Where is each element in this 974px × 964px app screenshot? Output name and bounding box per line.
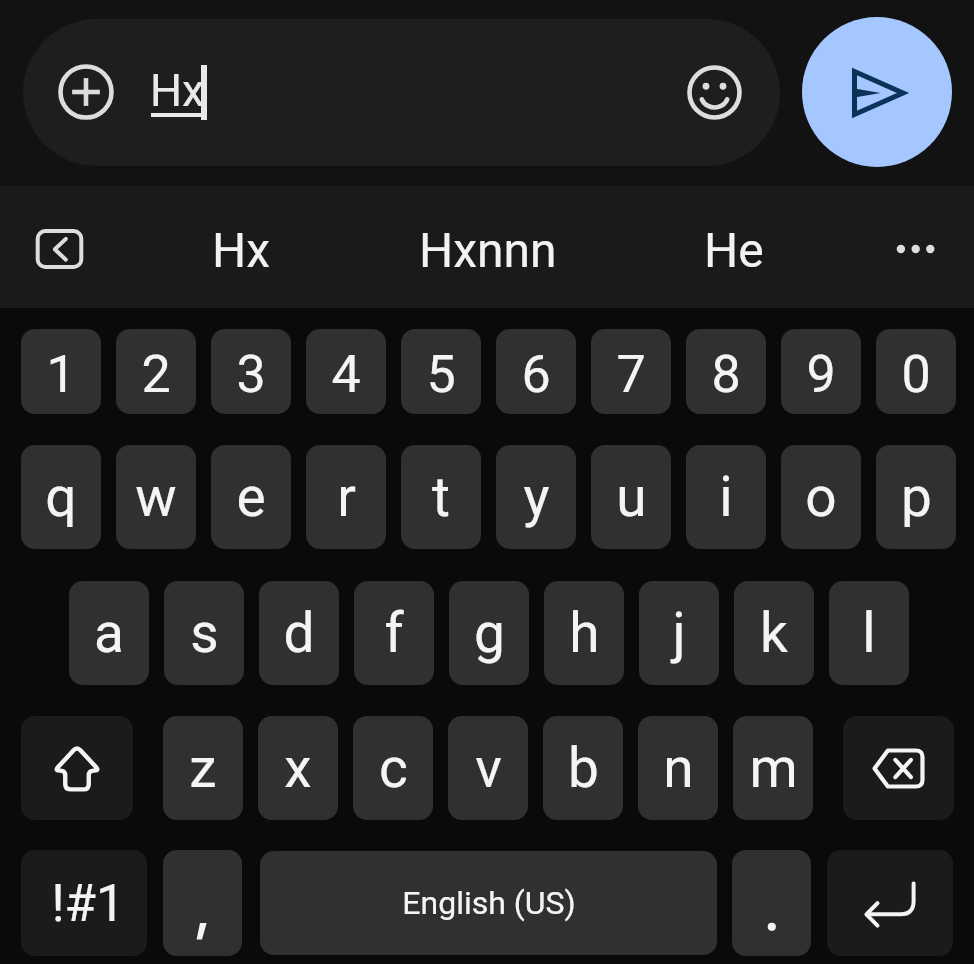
staticText: d: [283, 601, 315, 665]
button[interactable]: !#1: [21, 850, 147, 956]
button[interactable]: y: [496, 445, 576, 549]
staticText: s: [190, 601, 219, 665]
staticText: i: [719, 465, 733, 529]
staticText: h: [569, 601, 600, 665]
button[interactable]: Hxnnn: [388, 186, 588, 308]
staticText: Hxnnn: [419, 222, 557, 278]
button[interactable]: h: [544, 581, 624, 685]
staticText: u: [616, 465, 647, 529]
button[interactable]: o: [781, 445, 861, 549]
button[interactable]: r: [306, 445, 386, 549]
button[interactable]: x: [258, 716, 338, 820]
button[interactable]: Shift: [21, 716, 133, 820]
button[interactable]: Period: [732, 850, 811, 956]
button[interactable]: v: [448, 716, 528, 820]
button[interactable]: d: [259, 581, 339, 685]
staticText: He: [704, 222, 764, 278]
button[interactable]: 5: [401, 329, 481, 414]
staticText: 0: [901, 344, 931, 405]
button[interactable]: t: [401, 445, 481, 549]
staticText: 8: [711, 344, 741, 405]
staticText: c: [379, 736, 408, 800]
staticText: e: [236, 465, 266, 529]
button[interactable]: c: [353, 716, 433, 820]
button[interactable]: Backspace: [843, 716, 954, 820]
staticText: r: [337, 465, 356, 529]
button[interactable]: u: [591, 445, 671, 549]
button[interactable]: Hx: [141, 186, 341, 308]
button[interactable]: 9: [781, 329, 861, 414]
button[interactable]: m: [733, 716, 813, 820]
button[interactable]: Add attachment: [58, 64, 114, 120]
staticText: y: [523, 465, 550, 529]
staticText: o: [805, 465, 837, 529]
staticText: Hx: [150, 64, 205, 117]
staticText: 2: [141, 344, 171, 405]
button[interactable]: 1: [21, 329, 101, 414]
staticText: p: [901, 465, 932, 529]
staticText: m: [749, 736, 798, 800]
button[interactable]: More suggestions: [878, 213, 953, 285]
staticText: w: [135, 465, 177, 529]
staticText: q: [45, 465, 77, 529]
button[interactable]: j: [639, 581, 719, 685]
button[interactable]: l: [829, 581, 909, 685]
button[interactable]: f: [354, 581, 434, 685]
staticText: 3: [236, 344, 266, 405]
button[interactable]: 6: [496, 329, 576, 414]
button[interactable]: e: [211, 445, 291, 549]
staticText: b: [568, 736, 599, 800]
staticText: n: [663, 736, 694, 800]
button[interactable]: 3: [211, 329, 291, 414]
button[interactable]: Send: [802, 17, 952, 167]
button[interactable]: 7: [591, 329, 671, 414]
staticText: a: [94, 601, 124, 665]
button[interactable]: k: [734, 581, 814, 685]
button[interactable]: Comma: [163, 850, 242, 956]
staticText: k: [760, 601, 788, 665]
button[interactable]: i: [686, 445, 766, 549]
staticText: 5: [426, 344, 456, 405]
button[interactable]: b: [543, 716, 623, 820]
button[interactable]: n: [638, 716, 718, 820]
button[interactable]: 0: [876, 329, 956, 414]
button[interactable]: 2: [116, 329, 196, 414]
staticText: English (US): [402, 884, 576, 922]
button[interactable]: [23, 19, 780, 166]
staticText: 7: [616, 344, 646, 405]
button[interactable]: Enter: [827, 850, 953, 956]
button[interactable]: Emoji: [687, 65, 742, 120]
button[interactable]: q: [21, 445, 101, 549]
staticText: z: [189, 736, 217, 800]
button[interactable]: 4: [306, 329, 386, 414]
staticText: v: [475, 736, 502, 800]
button[interactable]: He: [634, 186, 834, 308]
staticText: !#1: [51, 874, 125, 934]
staticText: t: [432, 465, 450, 529]
staticText: 1: [46, 344, 76, 405]
button[interactable]: z: [163, 716, 243, 820]
staticText: x: [284, 736, 312, 800]
staticText: j: [672, 601, 686, 665]
staticText: Hx: [212, 222, 271, 278]
staticText: 6: [521, 344, 551, 405]
button[interactable]: 8: [686, 329, 766, 414]
staticText: l: [862, 601, 876, 665]
button[interactable]: p: [876, 445, 956, 549]
button[interactable]: Expand suggestions: [35, 228, 84, 270]
staticText: 4: [331, 344, 361, 405]
staticText: f: [384, 601, 404, 665]
staticText: g: [474, 601, 505, 665]
button[interactable]: w: [116, 445, 196, 549]
button[interactable]: a: [69, 581, 149, 685]
button[interactable]: English (US): [260, 851, 717, 955]
button[interactable]: g: [449, 581, 529, 685]
button[interactable]: s: [164, 581, 244, 685]
staticText: 9: [806, 344, 836, 405]
